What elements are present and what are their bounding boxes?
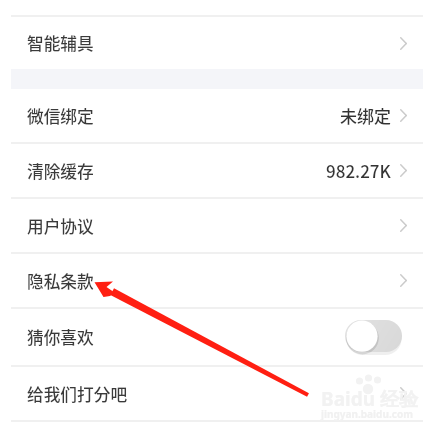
staticText: 用户协议: [27, 214, 94, 238]
button[interactable]: 隐私条款: [11, 254, 423, 307]
staticText: 未绑定: [340, 103, 391, 128]
button[interactable]: 用户协议: [11, 199, 423, 252]
staticText: jingyan.baidu.com: [321, 407, 413, 421]
staticText: 隐私条款: [27, 269, 94, 293]
button[interactable]: 猜你喜欢开关: [345, 320, 402, 354]
staticText: 微信绑定: [27, 104, 94, 128]
staticText: 982.27K: [326, 158, 391, 183]
button[interactable]: 清除缓存: [11, 144, 423, 197]
staticText: Baidu 经验: [321, 386, 418, 412]
staticText: 清除缓存: [27, 159, 94, 183]
button[interactable]: 智能辅具: [11, 17, 423, 69]
button[interactable]: 给我们打分吧: [11, 367, 423, 420]
button[interactable]: 猜你喜欢: [11, 309, 423, 365]
staticText: 智能辅具: [27, 31, 94, 55]
staticText: 给我们打分吧: [27, 382, 128, 406]
staticText: 猜你喜欢: [27, 325, 94, 349]
button[interactable]: 微信绑定: [11, 89, 423, 142]
